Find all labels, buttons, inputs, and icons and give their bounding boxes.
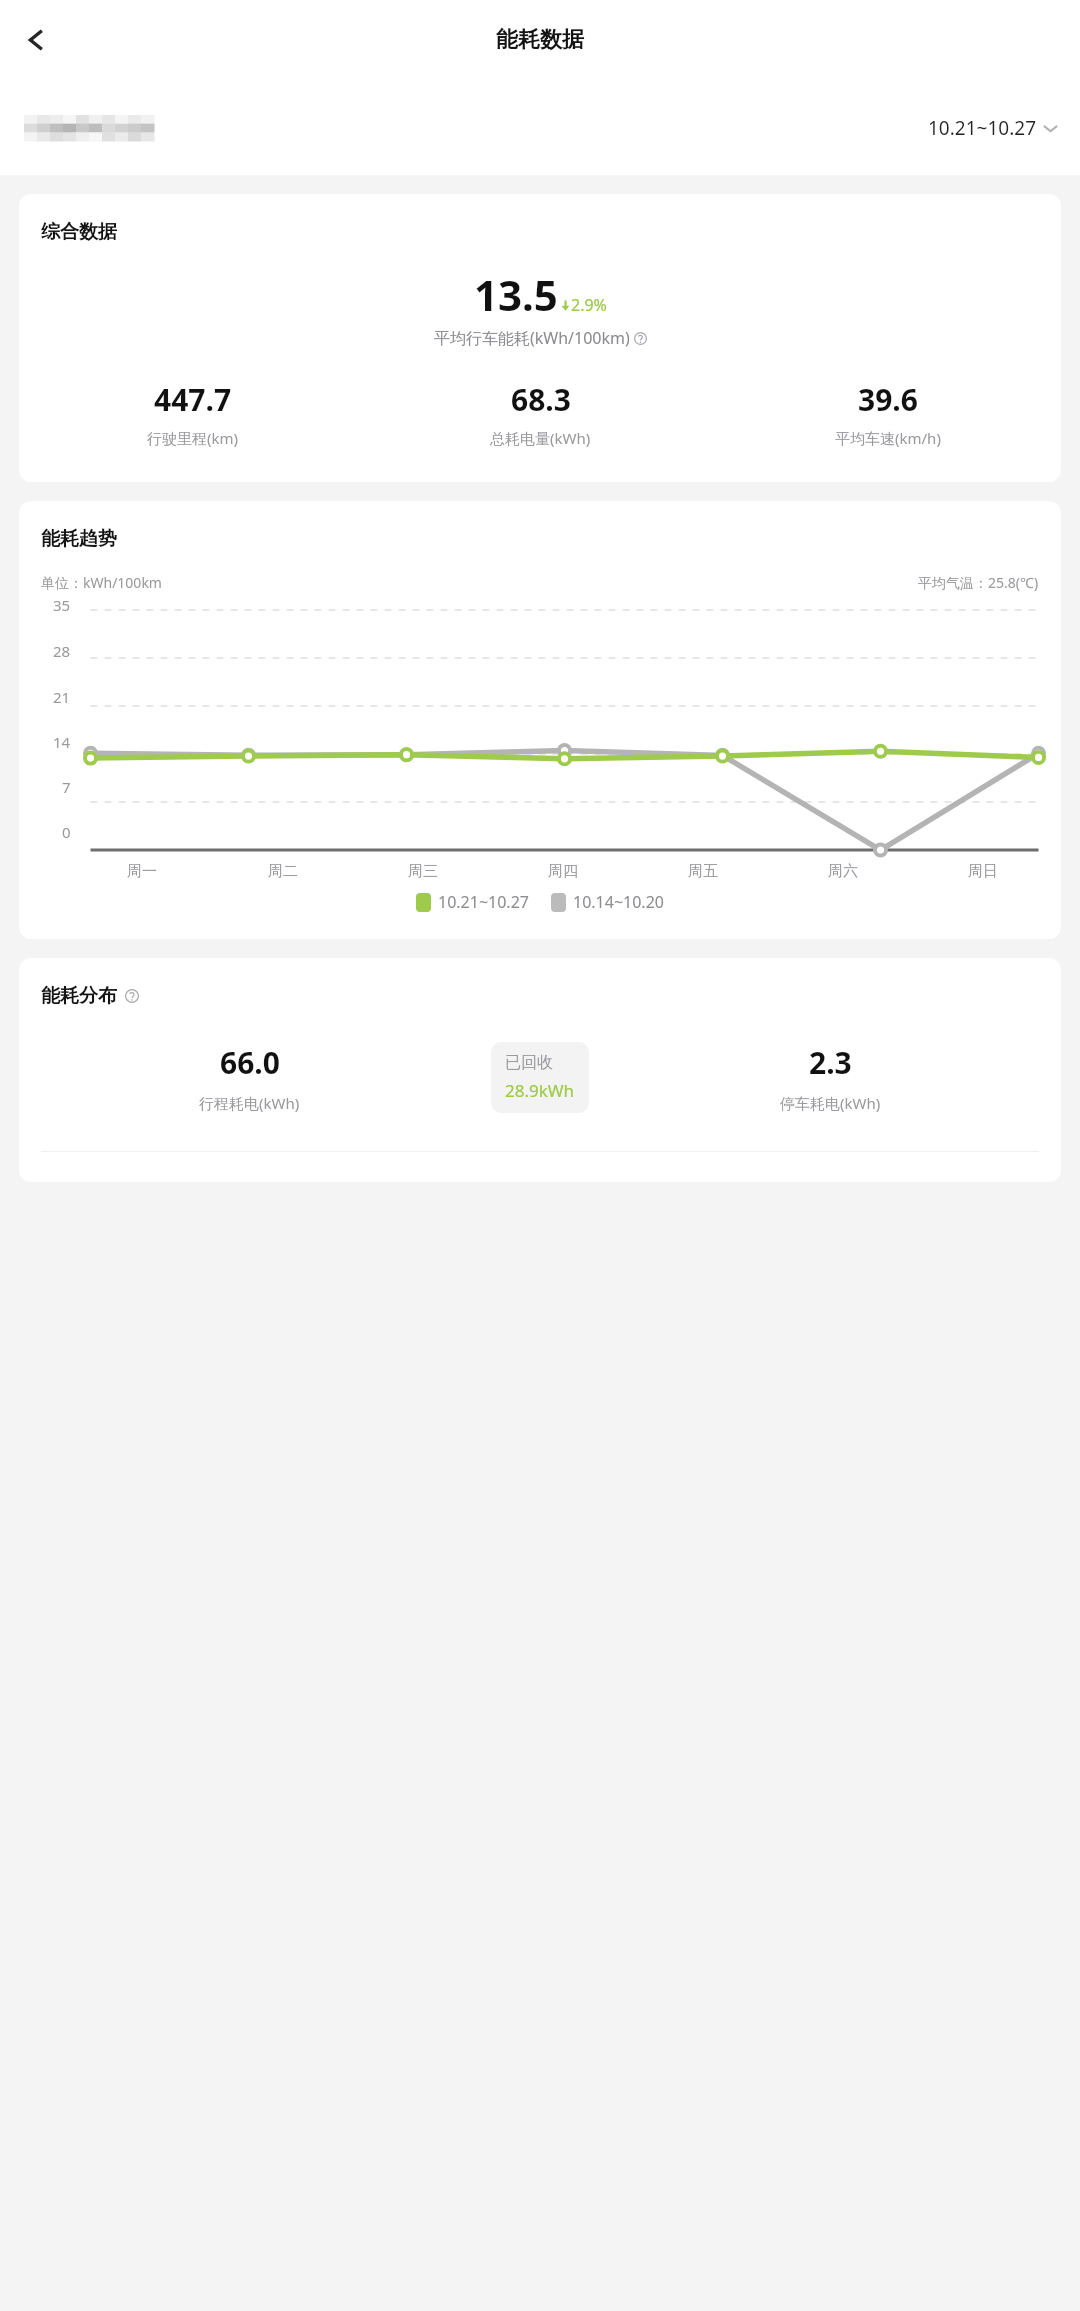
- staticText: 0: [62, 822, 71, 842]
- staticText: 2.3: [809, 1042, 852, 1083]
- staticText: 平均气温：25.8(℃): [918, 573, 1039, 592]
- staticText: 能耗分布: [41, 984, 117, 1008]
- staticText: 39.6: [858, 379, 918, 420]
- staticText: 68.3: [511, 379, 571, 420]
- staticText: 停车耗电(kWh): [780, 1093, 881, 1113]
- staticText: 14: [53, 732, 71, 752]
- staticText: 周一: [127, 862, 157, 881]
- staticText: 周二: [268, 862, 298, 881]
- staticText: 能耗趋势: [41, 527, 117, 551]
- staticText: 21: [53, 687, 71, 707]
- staticText: 单位：kWh/100km: [41, 573, 162, 592]
- staticText: 周六: [828, 862, 858, 881]
- staticText: 28.9kWh: [505, 1079, 575, 1102]
- staticText: 2.9%: [571, 294, 607, 316]
- staticText: 平均行车能耗(kWh/100km): [434, 327, 630, 349]
- staticText: 行程耗电(kWh): [199, 1093, 300, 1113]
- staticText: 周日: [968, 862, 998, 881]
- button[interactable]: Back: [14, 17, 60, 63]
- staticText: 7: [62, 777, 71, 797]
- staticText: 周五: [688, 862, 718, 881]
- staticText: 周四: [548, 862, 578, 881]
- staticText: 已回收: [505, 1053, 553, 1073]
- staticText: 平均车速(km/h): [835, 428, 941, 448]
- staticText: 35: [53, 595, 71, 615]
- staticText: 10.21~10.27: [928, 115, 1036, 141]
- staticText: 10.14~10.20: [573, 891, 664, 913]
- button[interactable]: 10.21~10.27: [928, 115, 1058, 141]
- staticText: 行驶里程(km): [147, 428, 239, 448]
- staticText: 能耗数据: [496, 26, 584, 54]
- staticText: 13.5: [474, 266, 558, 323]
- staticText: 66.0: [220, 1042, 280, 1083]
- staticText: 28: [53, 641, 71, 661]
- staticText: 447.7: [154, 379, 232, 420]
- staticText: 综合数据: [41, 220, 117, 244]
- staticText: 10.21~10.27: [438, 891, 529, 913]
- staticText: 总耗电量(kWh): [490, 428, 591, 448]
- staticText: 周三: [408, 862, 438, 881]
